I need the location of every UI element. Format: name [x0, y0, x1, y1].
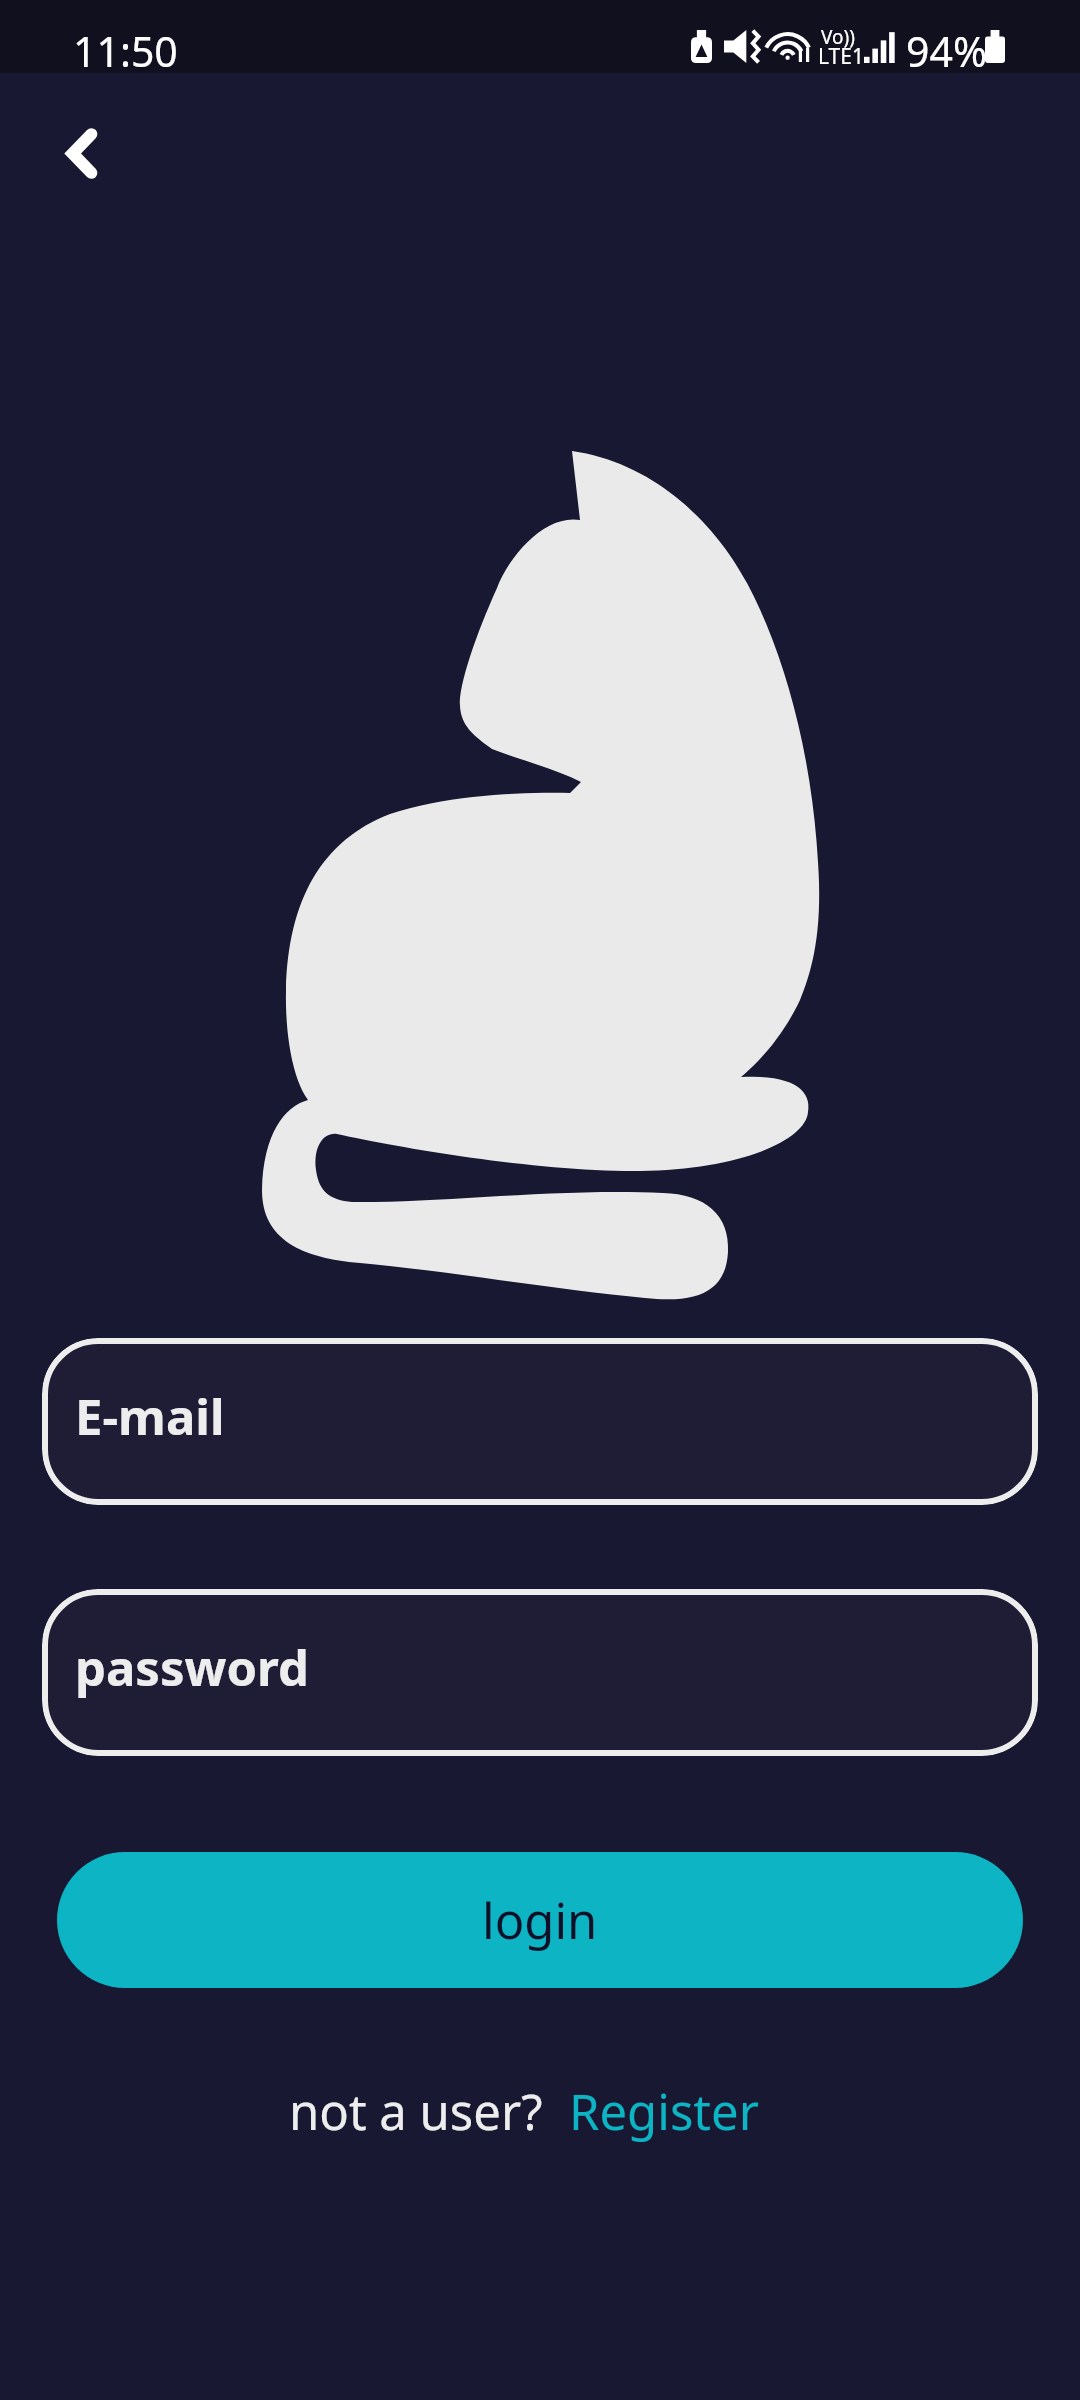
- staticText: Vo)): [821, 24, 855, 50]
- staticText: 11:50: [73, 23, 178, 79]
- staticText: not a user?: [289, 2078, 543, 2145]
- staticText: E-mail: [75, 1383, 225, 1450]
- staticText: password: [75, 1634, 309, 1701]
- button[interactable]: E-mail: [42, 1338, 1038, 1505]
- button[interactable]: Register: [569, 2078, 759, 2145]
- button[interactable]: Back: [26, 100, 130, 204]
- staticText: LTE1: [818, 42, 864, 71]
- staticText: Register: [569, 2078, 759, 2145]
- staticText: 94%: [906, 23, 987, 79]
- button[interactable]: password: [42, 1589, 1038, 1756]
- button[interactable]: login: [57, 1852, 1023, 1988]
- staticText: login: [482, 1887, 598, 1954]
